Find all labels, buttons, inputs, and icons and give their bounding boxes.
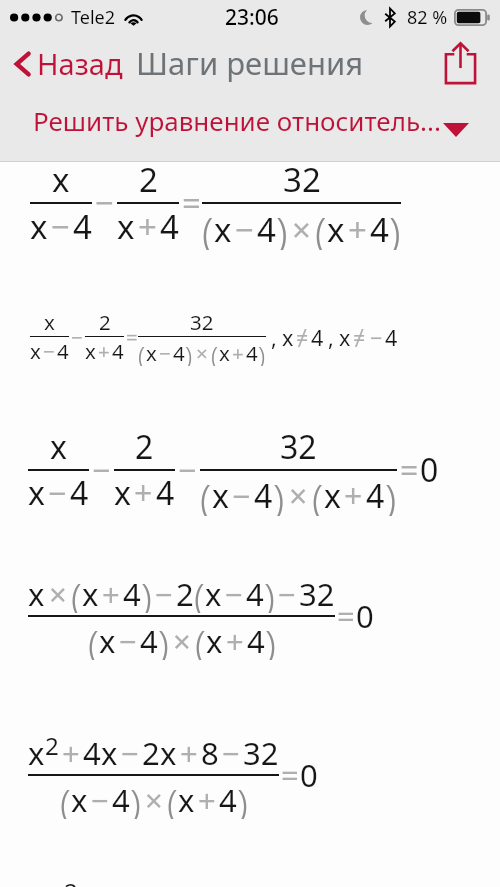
staticText: , (328, 323, 334, 352)
staticText: − (235, 207, 254, 252)
staticText: ) (158, 617, 169, 660)
staticText: x (206, 620, 223, 662)
staticText: − (43, 337, 55, 365)
staticText: − (225, 573, 243, 615)
staticText: − (51, 204, 70, 249)
staticText: x (85, 337, 96, 365)
staticText: ( (194, 570, 205, 613)
staticText: − (278, 573, 296, 615)
staticText: ) (141, 570, 152, 613)
staticText: x (282, 323, 294, 352)
staticText: 4 (83, 732, 101, 774)
staticText: 23:06 (225, 3, 279, 32)
staticText: ) (185, 337, 193, 366)
staticText: ) (258, 337, 266, 366)
staticText: 2 (45, 729, 59, 758)
staticText: ( (202, 204, 214, 250)
staticText: 4 (173, 339, 185, 367)
staticText: − (232, 474, 251, 518)
staticText: + (226, 620, 244, 662)
staticText: x (117, 204, 135, 249)
staticText: x (324, 474, 341, 518)
staticText: ( (60, 776, 71, 819)
staticText: Tele2 (71, 5, 115, 30)
staticText: ( (315, 204, 327, 250)
staticText: − (178, 448, 197, 492)
staticText: x (205, 573, 222, 615)
staticText: 32 (243, 732, 279, 774)
button[interactable]: Share (435, 36, 500, 90)
staticText: 0 (356, 595, 374, 637)
staticText: 2 (64, 875, 78, 887)
staticText: 4 (123, 573, 141, 615)
staticText: ( (167, 776, 178, 819)
staticText: 4 (156, 471, 175, 515)
staticText: ( (71, 570, 82, 613)
staticText: ) (273, 471, 285, 516)
staticText: + (232, 339, 244, 367)
staticText: x (30, 337, 41, 365)
staticText: 4 (257, 207, 276, 252)
staticText: x (28, 573, 45, 615)
staticText: ( (88, 617, 99, 660)
staticText: 32 (190, 308, 214, 336)
staticText: + (134, 471, 153, 515)
staticText: 4 (112, 337, 124, 365)
staticText: ) (385, 471, 397, 516)
staticText: x (160, 732, 177, 774)
staticText: 4 (73, 204, 92, 249)
staticText: = (337, 595, 355, 637)
staticText: Назад (37, 44, 123, 83)
staticText: + (138, 204, 157, 249)
staticText: x (101, 732, 118, 774)
staticText: x (30, 204, 48, 249)
staticText: ≠ (296, 323, 309, 352)
staticText: − (222, 732, 240, 774)
staticText: , (271, 323, 277, 352)
staticText: + (344, 474, 363, 518)
staticText: ( (200, 471, 212, 516)
button[interactable]: Назад (0, 38, 131, 89)
staticText: 4 (160, 204, 179, 249)
staticText: ( (195, 617, 206, 660)
staticText: x (219, 339, 230, 367)
staticText: 0 (300, 754, 318, 796)
staticText: − (48, 471, 67, 515)
staticText: x (28, 471, 45, 515)
staticText: 8 (201, 732, 219, 774)
staticText: + (98, 337, 110, 365)
staticText: ) (276, 204, 288, 250)
staticText: 4 (70, 471, 89, 515)
staticText: + (62, 732, 80, 774)
staticText: × (196, 339, 208, 367)
staticText: 0 (420, 448, 439, 492)
staticText: − (119, 620, 137, 662)
staticText: 4 (385, 323, 398, 352)
staticText: − (91, 779, 109, 821)
staticText: 4 (246, 573, 264, 615)
staticText: Шаги решения (136, 42, 364, 84)
staticText: 2 (135, 425, 154, 469)
staticText: ) (130, 776, 141, 819)
staticText: x (28, 732, 45, 774)
staticText: − (370, 323, 383, 352)
staticText: x (178, 779, 195, 821)
staticText: ( (138, 337, 146, 366)
staticText: ) (265, 617, 276, 660)
staticText: 4 (311, 323, 324, 352)
staticText: ( (312, 471, 324, 516)
staticText: 4 (140, 620, 158, 662)
staticText: × (292, 207, 311, 252)
staticText: ) (389, 204, 401, 250)
staticText: Решить уравнение относитель... (33, 103, 441, 138)
staticText: − (159, 339, 171, 367)
button[interactable]: Решить уравнение относитель... (0, 92, 500, 161)
staticText: 32 (283, 157, 321, 202)
staticText: = (126, 323, 138, 351)
staticText: 82 % (407, 5, 448, 30)
staticText: 32 (280, 425, 317, 469)
staticText: 2 (142, 732, 160, 774)
